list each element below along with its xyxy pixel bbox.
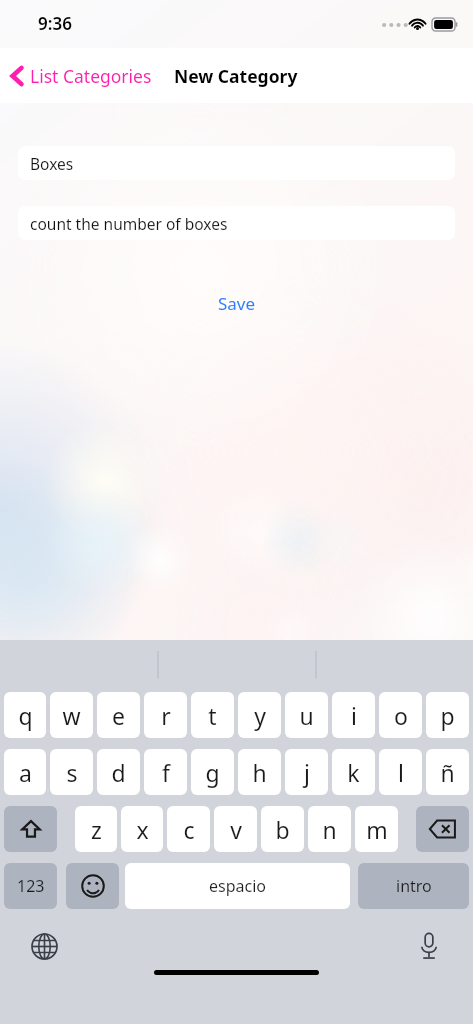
button[interactable]: t: [191, 692, 234, 738]
button[interactable]: p: [426, 692, 469, 738]
button[interactable]: k: [332, 749, 375, 795]
staticText: z: [91, 814, 102, 845]
button[interactable]: q: [4, 692, 46, 738]
staticText: f: [162, 757, 170, 788]
staticText: t: [208, 700, 217, 731]
button[interactable]: Save: [200, 286, 274, 321]
button[interactable]: List Categories: [10, 64, 156, 88]
button[interactable]: espacio: [125, 863, 350, 909]
staticText: 123: [17, 875, 45, 897]
staticText: v: [230, 814, 242, 845]
staticText: k: [347, 757, 360, 788]
staticText: l: [398, 757, 404, 788]
button[interactable]: intro: [358, 863, 469, 909]
staticText: e: [112, 700, 125, 731]
button[interactable]: u: [285, 692, 328, 738]
staticText: m: [366, 814, 388, 845]
button[interactable]: r: [144, 692, 187, 738]
button[interactable]: e: [97, 692, 140, 738]
button[interactable]: Dictation: [409, 926, 449, 966]
button[interactable]: l: [379, 749, 422, 795]
button[interactable]: Backspace: [416, 806, 469, 852]
staticText: p: [440, 700, 455, 731]
button[interactable]: f: [144, 749, 187, 795]
button[interactable]: c: [167, 806, 210, 852]
button[interactable]: x: [121, 806, 163, 852]
staticText: w: [62, 700, 81, 731]
button[interactable]: o: [379, 692, 422, 738]
button[interactable]: n: [308, 806, 351, 852]
button[interactable]: Shift: [4, 806, 57, 852]
button[interactable]: Boxes: [18, 146, 455, 180]
staticText: New Category: [174, 64, 298, 88]
staticText: List Categories: [30, 64, 152, 88]
staticText: c: [183, 814, 195, 845]
staticText: Boxes: [30, 153, 74, 174]
staticText: s: [66, 757, 78, 788]
button[interactable]: s: [50, 749, 93, 795]
button[interactable]: count the number of boxes: [18, 206, 455, 240]
staticText: j: [304, 757, 310, 788]
staticText: d: [111, 757, 126, 788]
button[interactable]: z: [75, 806, 117, 852]
staticText: r: [161, 700, 171, 731]
staticText: b: [275, 814, 290, 845]
staticText: i: [351, 700, 357, 731]
staticText: Save: [218, 292, 256, 315]
button[interactable]: h: [238, 749, 281, 795]
button[interactable]: i: [332, 692, 375, 738]
button[interactable]: a: [4, 749, 46, 795]
staticText: o: [394, 700, 408, 731]
staticText: n: [322, 814, 337, 845]
button[interactable]: g: [191, 749, 234, 795]
staticText: a: [19, 757, 32, 788]
staticText: g: [205, 757, 220, 788]
button[interactable]: w: [50, 692, 93, 738]
staticText: q: [18, 700, 33, 731]
staticText: 9:36: [38, 12, 72, 35]
button[interactable]: Change keyboard language: [24, 926, 64, 966]
button[interactable]: 123: [4, 863, 57, 909]
staticText: h: [252, 757, 267, 788]
staticText: intro: [396, 875, 432, 897]
staticText: espacio: [209, 875, 266, 897]
staticText: u: [299, 700, 314, 731]
button[interactable]: m: [355, 806, 398, 852]
button[interactable]: b: [261, 806, 304, 852]
button[interactable]: ñ: [426, 749, 469, 795]
staticText: ñ: [440, 757, 455, 788]
staticText: x: [136, 814, 149, 845]
button[interactable]: Emoji: [66, 863, 119, 909]
button[interactable]: v: [214, 806, 257, 852]
button[interactable]: d: [97, 749, 140, 795]
button[interactable]: y: [238, 692, 281, 738]
button[interactable]: j: [285, 749, 328, 795]
staticText: y: [254, 700, 266, 731]
staticText: count the number of boxes: [30, 213, 228, 234]
